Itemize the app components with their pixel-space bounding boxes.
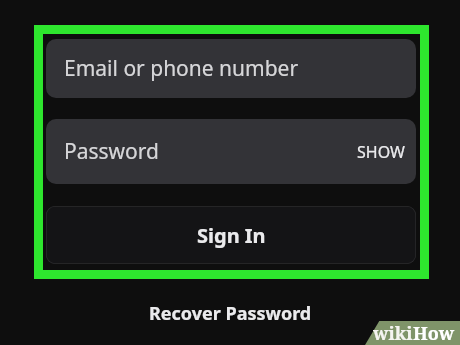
staticText: Recover Password (149, 301, 312, 326)
button[interactable]: Recover Password (139, 297, 322, 330)
staticText: Sign In (197, 222, 266, 249)
staticText: How (413, 321, 455, 345)
staticText: Email or phone number (64, 54, 299, 83)
button[interactable]: Sign In (46, 206, 416, 264)
button[interactable]: SHOW (346, 131, 416, 173)
staticText: SHOW (357, 141, 405, 163)
button[interactable]: Email or phone number (46, 39, 416, 98)
staticText: wiki (373, 321, 413, 345)
other: wikiHow (365, 321, 460, 345)
button[interactable]: Password (46, 119, 416, 184)
staticText: Password (64, 137, 159, 166)
